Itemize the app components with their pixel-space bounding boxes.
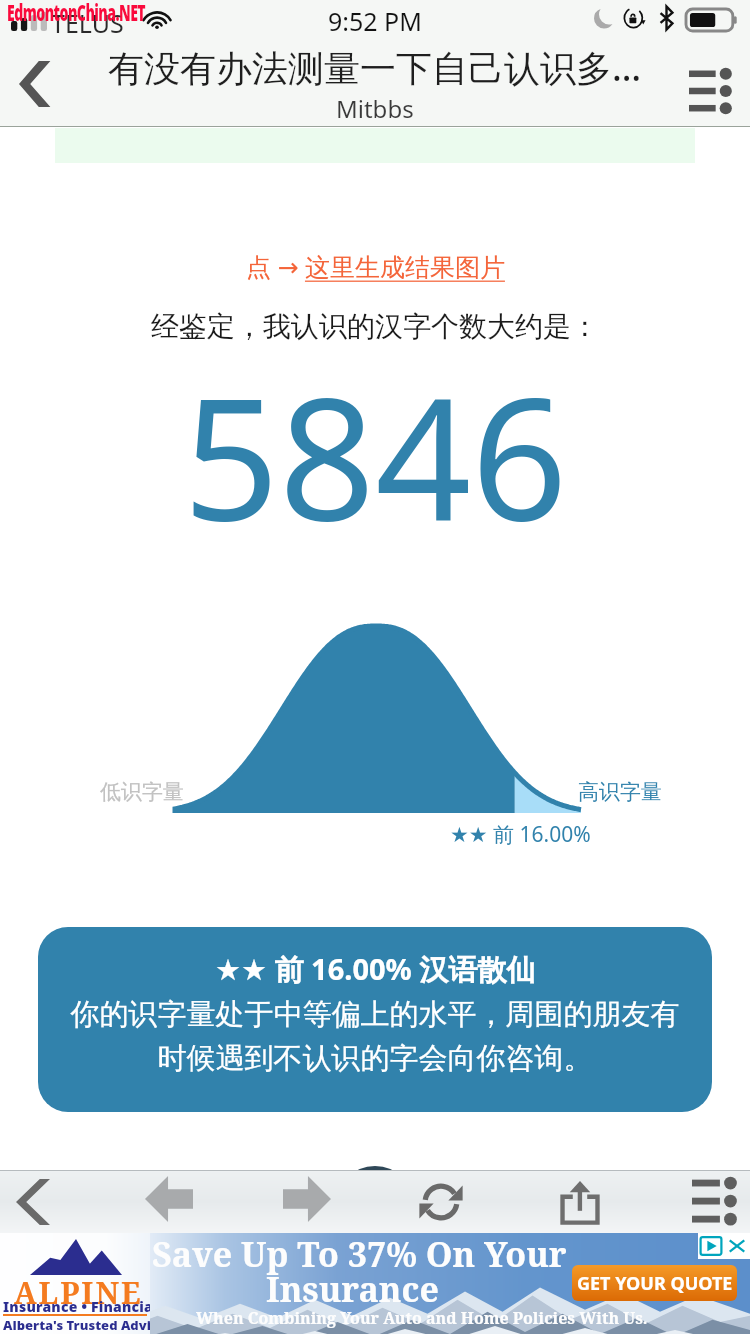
staticText: 经鉴定，我认识的汉字个数大约是：	[151, 309, 599, 344]
staticText: Save Up To 37% On Your	[152, 1231, 567, 1277]
staticText: Mitbbs	[336, 92, 414, 125]
staticText: Insurance • Financial	[3, 1297, 150, 1316]
button[interactable]: Menu	[673, 52, 747, 126]
staticText: GET YOUR QUOTE	[577, 1271, 733, 1296]
button[interactable]: Next page	[272, 1167, 342, 1230]
staticText: 低识字量	[100, 779, 184, 805]
button[interactable]: Share	[545, 1170, 615, 1233]
staticText: Alberta's Trusted Advisors	[3, 1316, 150, 1334]
staticText: EdmontonChina.NET	[7, 0, 146, 29]
staticText: 高识字量	[578, 779, 662, 805]
staticText: 你的识字量处于中等偏上的水平，周围的朋友有时候遇到不认识的字会向你咨询。	[64, 996, 686, 1076]
staticText: Insurance	[266, 1266, 439, 1312]
staticText: ★★ 前 16.00% 汉语散仙	[215, 949, 536, 989]
button[interactable]: ★★ 前 16.00% 汉语散仙	[38, 927, 712, 1112]
staticText: 有没有办法测量一下自己认识多…	[108, 43, 642, 92]
button[interactable]: Back	[0, 1170, 66, 1233]
button[interactable]: Back	[0, 49, 70, 119]
button[interactable]: Previous page	[134, 1167, 204, 1230]
staticText: 9:52 PM	[328, 4, 422, 38]
staticText: ★★ 前 16.00%	[450, 820, 591, 849]
button[interactable]: 点 → 这里生成结果图片	[246, 249, 505, 283]
staticText: TELUS	[51, 6, 124, 40]
button[interactable]: GET YOUR QUOTE	[572, 1265, 737, 1301]
button[interactable]: Menu	[679, 1167, 749, 1230]
staticText: When Combining Your Auto and Home Polici…	[196, 1307, 648, 1329]
staticText: 5846	[183, 340, 568, 569]
button[interactable]: Refresh	[406, 1170, 476, 1233]
staticText: ALPINE	[14, 1272, 143, 1313]
